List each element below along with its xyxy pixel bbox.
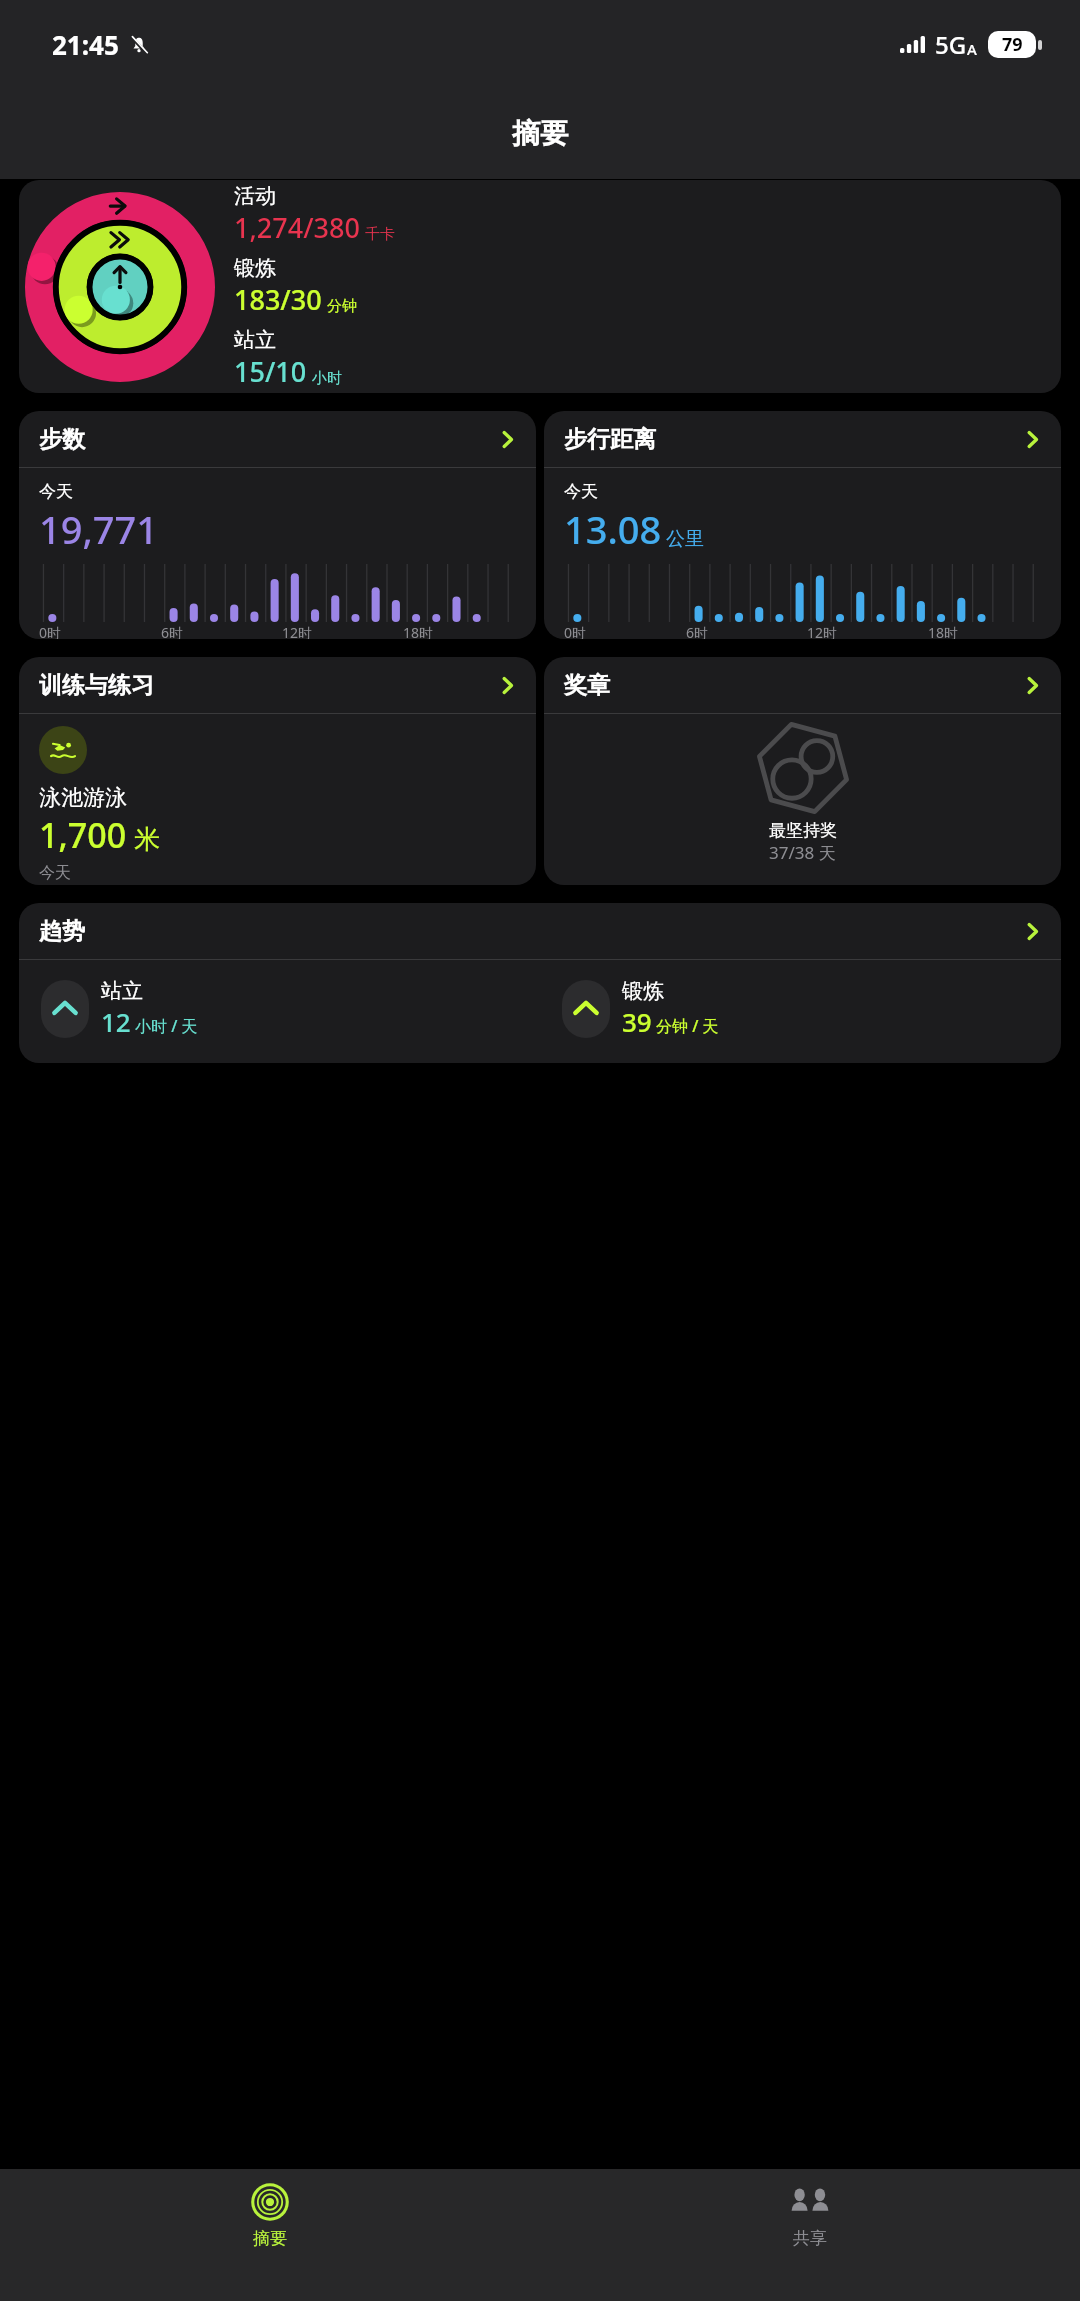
staticText: 活动 (234, 183, 276, 209)
staticText: 泳池游泳 (39, 784, 127, 812)
button[interactable]: 奖章 (544, 657, 1061, 885)
button[interactable]: 步行距离 (544, 411, 1061, 639)
other: 步数 (497, 429, 518, 450)
staticText: A (967, 39, 977, 59)
staticText: 39 (622, 1004, 652, 1039)
staticText: 锻炼 (234, 255, 276, 281)
staticText: 79 (1002, 32, 1023, 57)
staticText: 0时 (39, 623, 62, 639)
other: 步行距离 (1022, 429, 1043, 450)
staticText: 站立 (234, 327, 276, 353)
staticText: 12时 (807, 623, 838, 639)
staticText: 12 (101, 1004, 131, 1039)
staticText: 1,700 (39, 812, 127, 858)
staticText: 步数 (39, 425, 85, 454)
staticText: 15/10 (234, 353, 307, 390)
button[interactable]: 步数 (19, 411, 536, 639)
staticText: 12时 (282, 623, 313, 639)
staticText: 6时 (686, 623, 709, 639)
staticText: 小时 / 天 (135, 1015, 198, 1037)
other: 趋势 (1022, 921, 1043, 942)
button[interactable]: 共享 (540, 2169, 1080, 2301)
staticText: 6时 (161, 623, 184, 639)
staticText: 公里 (666, 527, 704, 551)
staticText: 米 (134, 823, 160, 856)
staticText: 37/38 天 (769, 841, 836, 864)
staticText: 千卡 (365, 225, 395, 244)
other: 奖章 (1022, 675, 1043, 696)
staticText: 5G (935, 28, 967, 61)
staticText: 最坚持奖 (769, 820, 837, 841)
staticText: 分钟 (327, 297, 357, 316)
staticText: 锻炼 (622, 978, 664, 1004)
staticText: 18时 (928, 623, 959, 639)
staticText: 站立 (101, 978, 143, 1004)
staticText: 21:45 (52, 27, 119, 62)
staticText: 18时 (403, 623, 434, 639)
staticText: 分钟 / 天 (656, 1015, 719, 1037)
staticText: 今天 (564, 481, 598, 502)
staticText: 今天 (39, 481, 73, 502)
button[interactable]: 训练与练习 (19, 657, 536, 885)
staticText: 摘要 (253, 2228, 287, 2249)
button[interactable]: 活动 (19, 180, 1061, 393)
button[interactable]: 摘要 (0, 2169, 540, 2301)
staticText: 0时 (564, 623, 587, 639)
staticText: 今天 (39, 863, 71, 883)
staticText: 步行距离 (564, 425, 656, 454)
staticText: 19,771 (39, 503, 159, 555)
button[interactable]: 趋势 (19, 903, 1061, 1063)
staticText: 训练与练习 (39, 671, 154, 700)
staticText: 183/30 (234, 281, 322, 318)
other: 训练与练习 (497, 675, 518, 696)
staticText: 共享 (793, 2228, 827, 2249)
staticText: 摘要 (512, 116, 568, 151)
staticText: 1,274/380 (234, 209, 360, 246)
staticText: 小时 (312, 369, 342, 388)
staticText: 趋势 (39, 917, 85, 946)
staticText: 13.08 (564, 503, 662, 555)
staticText: 奖章 (564, 671, 610, 700)
